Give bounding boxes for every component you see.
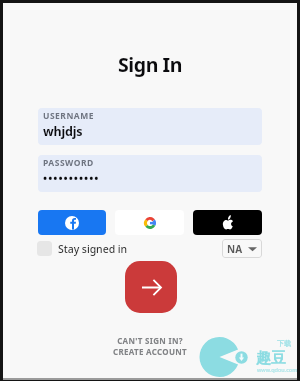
button[interactable]: Sign in with Facebook [38,210,106,235]
button[interactable]: USERNAME [38,108,262,145]
button[interactable]: Sign in with Google [115,210,184,235]
staticText: Stay signed in [58,242,128,256]
button[interactable]: PASSWORD [38,155,262,192]
staticText: ••••••••••• [43,170,100,185]
button[interactable]: CREATE ACCOUNT [3,346,297,357]
staticText: whjdjs [43,123,83,140]
staticText: PASSWORD [43,157,94,169]
staticText: www.qdou.com [257,366,298,373]
button[interactable]: Sign in with Apple [193,210,262,235]
button[interactable]: Sign in [125,261,177,313]
staticText: Sign In [3,51,297,78]
button[interactable]: CAN'T SIGN IN? [3,335,297,346]
staticText: 趣豆 [256,349,286,368]
staticText: USERNAME [43,110,95,122]
button[interactable]: Stay signed in [37,239,128,258]
button[interactable]: Region NA [222,239,262,258]
staticText: 下载 [277,339,291,348]
staticText: NA [227,242,243,256]
